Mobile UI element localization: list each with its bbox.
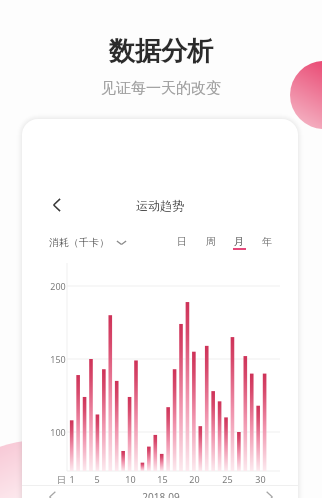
staticText: 15 bbox=[157, 473, 168, 485]
button[interactable]: 月 bbox=[226, 235, 252, 250]
staticText: 日 bbox=[57, 474, 66, 485]
staticText: 5 bbox=[94, 473, 100, 485]
staticText: 消耗（千卡） bbox=[49, 236, 109, 249]
button[interactable]: Previous month bbox=[43, 488, 61, 498]
staticText: 1 bbox=[69, 473, 75, 485]
staticText: 月 bbox=[234, 235, 244, 248]
button[interactable]: Next month bbox=[261, 488, 279, 498]
staticText: 100 bbox=[50, 426, 66, 438]
staticText: 数据分析 bbox=[0, 35, 322, 68]
staticText: 运动趋势 bbox=[22, 198, 298, 213]
staticText: 见证每一天的改变 bbox=[0, 79, 322, 98]
staticText: 年 bbox=[262, 235, 272, 248]
staticText: 25 bbox=[222, 473, 233, 485]
button[interactable]: 日 bbox=[169, 235, 195, 250]
staticText: 周 bbox=[206, 235, 216, 248]
button[interactable]: 年 bbox=[254, 235, 280, 250]
staticText: 日 bbox=[177, 235, 187, 248]
staticText: 150 bbox=[50, 353, 66, 365]
button[interactable]: Back bbox=[44, 192, 70, 218]
staticText: 2018-09 bbox=[61, 490, 261, 498]
button[interactable]: 消耗（千卡） bbox=[49, 236, 127, 249]
staticText: 200 bbox=[50, 280, 66, 292]
staticText: 20 bbox=[189, 473, 200, 485]
staticText: 10 bbox=[125, 473, 136, 485]
button[interactable]: 周 bbox=[198, 235, 224, 250]
staticText: 30 bbox=[255, 473, 266, 485]
